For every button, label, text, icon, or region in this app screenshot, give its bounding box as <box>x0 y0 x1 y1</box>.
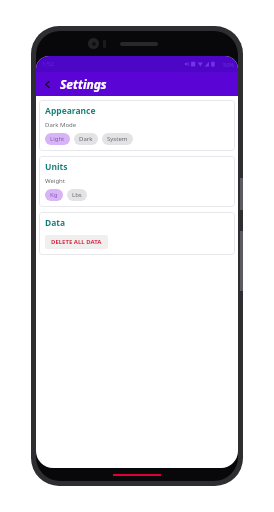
staticText: Light <box>50 135 65 143</box>
staticText: 50% <box>223 61 234 68</box>
staticText: Dark <box>79 135 93 143</box>
staticText: Units <box>45 161 68 173</box>
staticText: Lbs <box>72 191 82 199</box>
staticText: System <box>107 135 128 143</box>
staticText: Dark Mode <box>45 121 77 129</box>
staticText: DELETE ALL DATA <box>51 238 102 246</box>
button[interactable]: Lbs <box>67 189 87 201</box>
button[interactable]: DELETE ALL DATA <box>45 235 108 249</box>
button[interactable]: Back <box>38 75 56 93</box>
staticText: 1:52 <box>42 60 54 68</box>
staticText: Weight <box>45 177 65 185</box>
staticText: Kg <box>50 191 58 199</box>
button[interactable]: Dark <box>74 133 98 145</box>
button[interactable]: Kg <box>45 189 63 201</box>
button[interactable]: System <box>102 133 133 145</box>
staticText: Appearance <box>45 105 96 117</box>
button[interactable]: Light <box>45 133 70 145</box>
staticText: Settings <box>60 76 107 92</box>
staticText: Data <box>45 217 66 229</box>
